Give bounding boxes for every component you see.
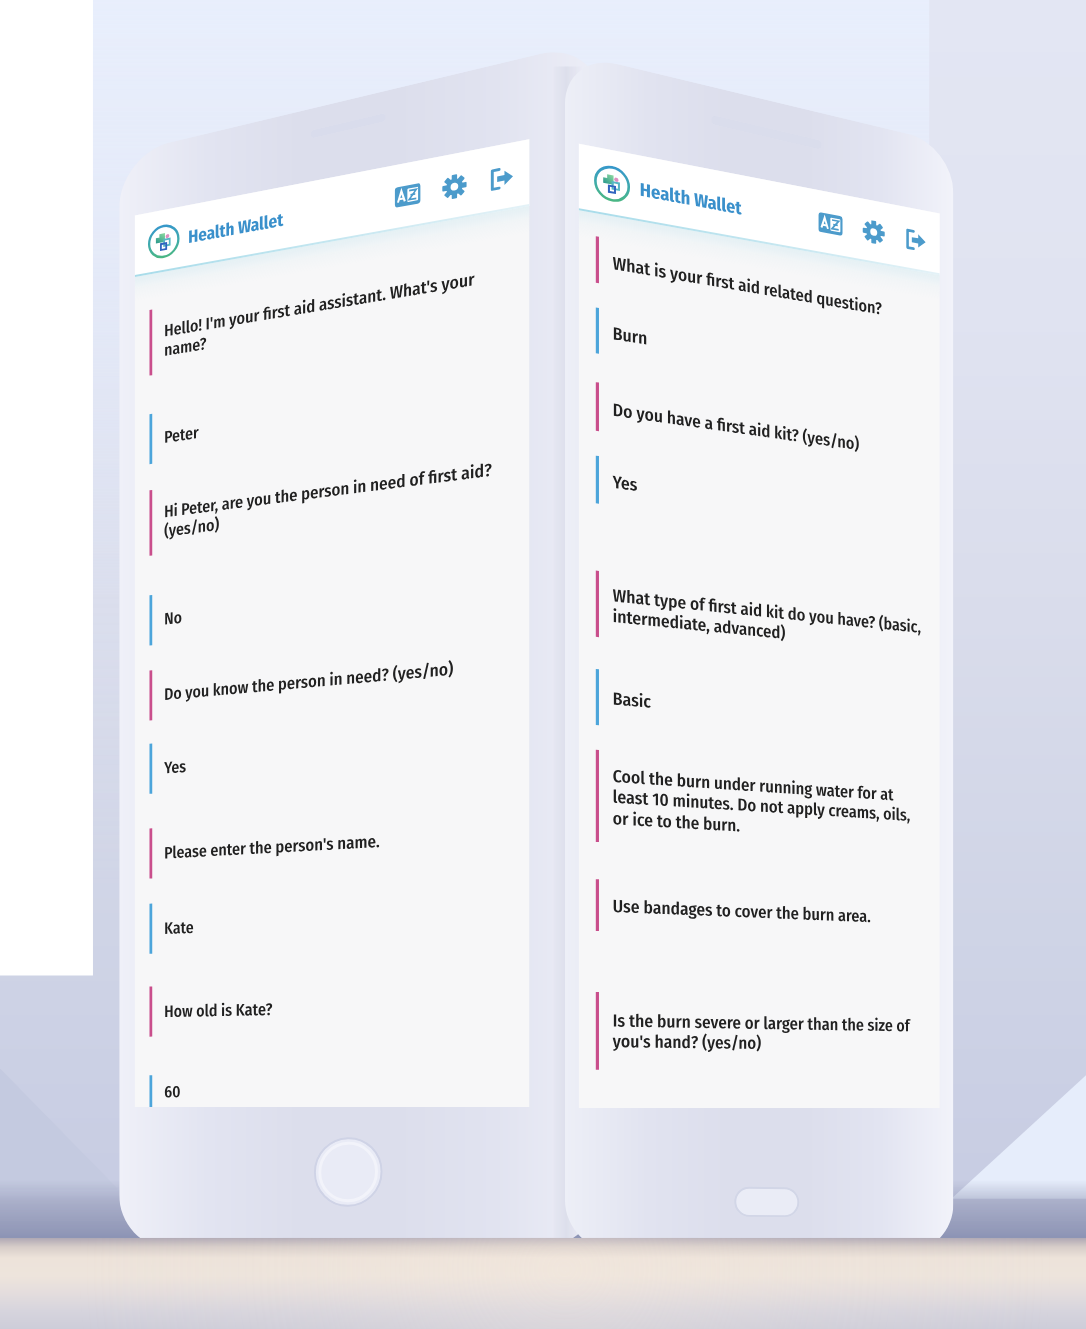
staticText: Health Wallet (188, 208, 284, 248)
staticText: Please enter the person's name. (164, 823, 514, 862)
button[interactable]: Settings (862, 218, 885, 246)
staticText: Do you have a first aid kit? (yes/no) (613, 399, 927, 463)
staticText: What is your first aid related question? (613, 252, 927, 326)
staticText: Cool the burn under running water for at… (613, 765, 927, 847)
button[interactable]: Translate (819, 211, 842, 237)
button[interactable]: Yes (149, 715, 514, 794)
button[interactable]: 60 (149, 1073, 514, 1107)
staticText: Use bandages to cover the burn area. (613, 895, 927, 928)
button[interactable]: What type of first aid kit do you have? … (596, 571, 927, 668)
button[interactable]: Do you know the person in need? (yes/no) (149, 636, 514, 720)
button[interactable]: Burn (596, 308, 927, 403)
button[interactable]: Do you have a first aid kit? (yes/no) (596, 382, 927, 476)
button[interactable]: Please enter the person's name. (149, 806, 514, 879)
button[interactable]: How old is Kate? (149, 977, 514, 1037)
staticText: Basic (613, 688, 927, 734)
button[interactable]: What is your first aid related question? (596, 236, 927, 338)
button[interactable]: Hello! I'm your first aid assistant. Wha… (149, 247, 514, 376)
staticText: What type of first aid kit do you have? … (613, 585, 927, 658)
button[interactable]: Cool the burn under running water for at… (596, 750, 927, 860)
staticText: No (164, 572, 514, 628)
button[interactable]: Yes (596, 456, 927, 544)
button[interactable]: Translate (395, 182, 420, 209)
staticText: How old is Kate? (164, 994, 514, 1021)
staticText: Yes (164, 732, 514, 777)
staticText: Do you know the person in need? (yes/no) (164, 653, 514, 704)
button[interactable]: Kate (149, 888, 514, 954)
staticText: Burn (613, 323, 927, 392)
staticText: Is the burn severe or larger than the si… (613, 1010, 927, 1056)
button[interactable]: Use bandages to cover the burn area. (596, 879, 927, 943)
staticText: 60 (164, 1080, 514, 1101)
button[interactable]: Is the burn severe or larger than the si… (596, 992, 927, 1072)
button[interactable]: Peter (149, 359, 514, 464)
button[interactable]: Health Wallet (593, 161, 742, 227)
button[interactable]: No (149, 555, 514, 645)
staticText: Peter (164, 376, 514, 447)
staticText: Hello! I'm your first aid assistant. Wha… (164, 262, 514, 361)
staticText: Yes (613, 471, 927, 531)
button[interactable]: Log out (489, 164, 513, 193)
button[interactable]: Health Wallet (147, 201, 284, 262)
button[interactable]: Hi Peter, are you the person in need of … (149, 442, 514, 556)
button[interactable]: Settings (442, 172, 467, 201)
button[interactable]: Basic (596, 669, 927, 750)
staticText: Health Wallet (640, 178, 742, 220)
staticText: Kate (164, 904, 514, 938)
button[interactable]: Log out (905, 227, 926, 253)
staticText: Hi Peter, are you the person in need of … (164, 456, 514, 541)
